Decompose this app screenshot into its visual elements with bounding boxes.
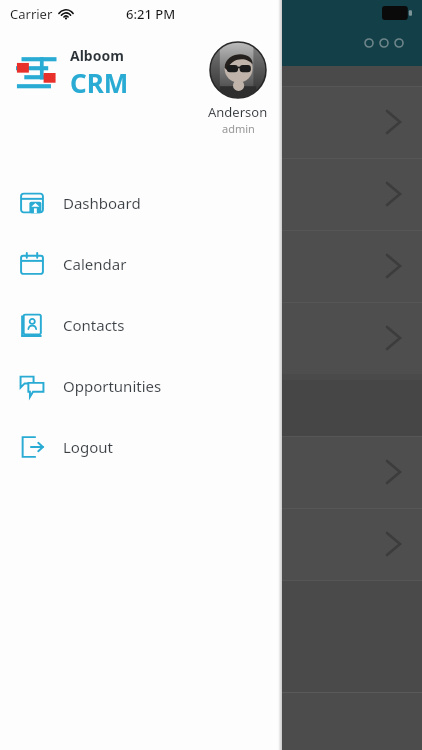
button[interactable] — [0, 86, 422, 158]
button[interactable]: Dashboard — [0, 172, 282, 233]
button[interactable]: Calendar — [0, 233, 282, 294]
staticText: CRM — [70, 65, 129, 100]
button[interactable] — [0, 230, 422, 302]
button[interactable] — [0, 302, 422, 374]
button[interactable]: Anderson — [208, 42, 268, 136]
staticText: Dashboard — [63, 193, 141, 213]
staticText: Opportunities — [63, 376, 162, 396]
button[interactable]: Opportunities — [0, 355, 282, 416]
staticText: Calendar — [63, 254, 127, 274]
staticText: admin — [222, 121, 255, 136]
button[interactable]: Logout — [0, 416, 282, 477]
staticText: Anderson — [208, 103, 268, 121]
staticText: Alboom — [70, 46, 124, 65]
button[interactable] — [0, 508, 422, 580]
staticText: 6:21 PM — [126, 5, 176, 23]
button[interactable] — [0, 436, 422, 508]
staticText: Logout — [63, 437, 113, 457]
button[interactable] — [0, 158, 422, 230]
staticText: Carrier — [10, 5, 53, 23]
staticText: Contacts — [63, 315, 125, 335]
button[interactable]: Contacts — [0, 294, 282, 355]
